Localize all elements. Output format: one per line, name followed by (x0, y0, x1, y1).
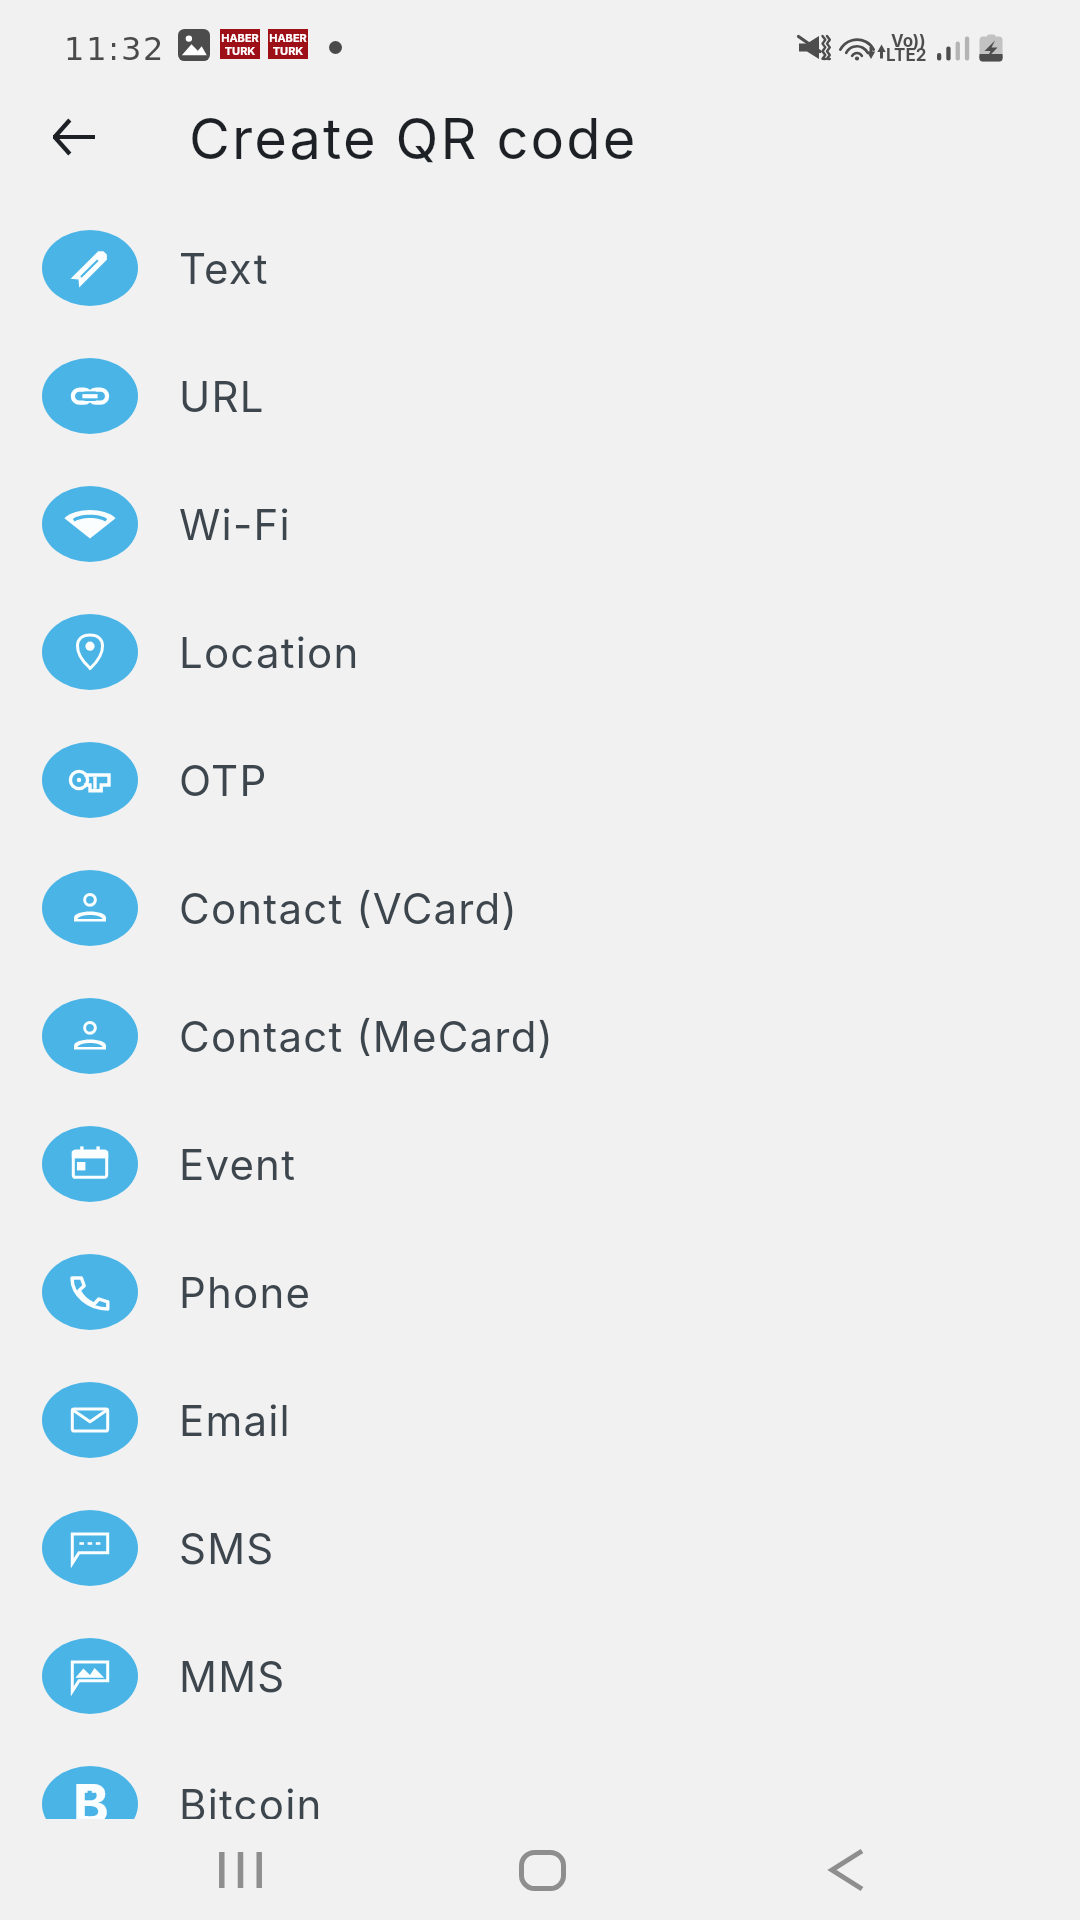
staticText: Contact (VCard) (179, 883, 519, 934)
staticText: HABER (268, 31, 308, 44)
button[interactable]: Home (497, 1825, 587, 1915)
staticText: Email (179, 1395, 291, 1446)
button[interactable]: URL (0, 332, 1080, 460)
button[interactable]: Contact (MeCard) (0, 972, 1080, 1100)
staticText: Phone (179, 1267, 312, 1318)
staticText: B (73, 1771, 109, 1836)
staticText: HABER (220, 31, 260, 44)
button[interactable]: Back (802, 1825, 892, 1915)
staticText: URL (179, 371, 265, 422)
staticText: Event (179, 1139, 297, 1190)
button[interactable]: Phone (0, 1228, 1080, 1356)
button[interactable]: Recent apps (195, 1825, 285, 1915)
staticText: Text (179, 243, 269, 294)
staticText: Bitcoin (179, 1779, 323, 1830)
staticText: SMS (179, 1523, 275, 1574)
staticText: Vo)) (891, 31, 926, 52)
staticText: MMS (179, 1651, 286, 1702)
staticText: Create QR code (189, 105, 638, 173)
staticText: TURK (268, 44, 308, 57)
button[interactable]: Wi-Fi (0, 460, 1080, 588)
button[interactable]: Email (0, 1356, 1080, 1484)
staticText: 11:32 (64, 30, 166, 67)
button[interactable]: Contact (VCard) (0, 844, 1080, 972)
staticText: Location (179, 627, 360, 678)
staticText: TURK (220, 44, 260, 57)
staticText: Contact (MeCard) (179, 1011, 555, 1062)
button[interactable]: Location (0, 588, 1080, 716)
staticText: Wi-Fi (179, 499, 291, 550)
staticText: OTP (179, 755, 268, 806)
button[interactable]: OTP (0, 716, 1080, 844)
button[interactable]: Text (0, 204, 1080, 332)
staticText: LTE2 (886, 45, 927, 66)
button[interactable]: Event (0, 1100, 1080, 1228)
button[interactable]: Back (24, 90, 124, 184)
button[interactable]: B (0, 1740, 1080, 1868)
button[interactable]: MMS (0, 1612, 1080, 1740)
button[interactable]: SMS (0, 1484, 1080, 1612)
